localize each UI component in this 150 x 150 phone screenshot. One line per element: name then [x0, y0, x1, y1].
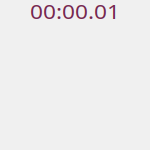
staticText: 00:00.01 — [30, 0, 120, 27]
